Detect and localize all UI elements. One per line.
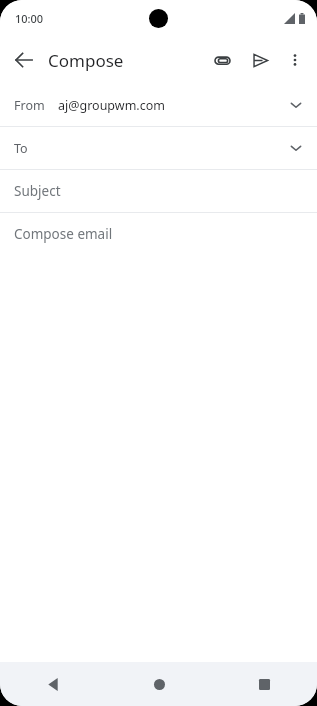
button[interactable]: Back (8, 44, 40, 76)
button[interactable]: Back (31, 662, 75, 706)
button[interactable]: Send (243, 43, 277, 77)
staticText: 10:00 (15, 11, 44, 26)
button[interactable]: From (0, 84, 317, 126)
button[interactable]: More options (279, 44, 311, 76)
staticText: From (14, 97, 45, 114)
staticText: Compose email (14, 225, 113, 243)
button[interactable]: To (0, 127, 317, 169)
button[interactable]: Attach file (205, 43, 239, 77)
button[interactable]: Home (137, 662, 181, 706)
staticText: Compose (48, 49, 124, 72)
button[interactable]: Recent apps (242, 662, 286, 706)
button[interactable]: Subject (0, 170, 317, 212)
staticText: Subject (14, 182, 61, 200)
staticText: aj@groupwm.com (58, 97, 165, 114)
button[interactable]: Compose email (0, 213, 317, 255)
staticText: To (14, 140, 28, 157)
